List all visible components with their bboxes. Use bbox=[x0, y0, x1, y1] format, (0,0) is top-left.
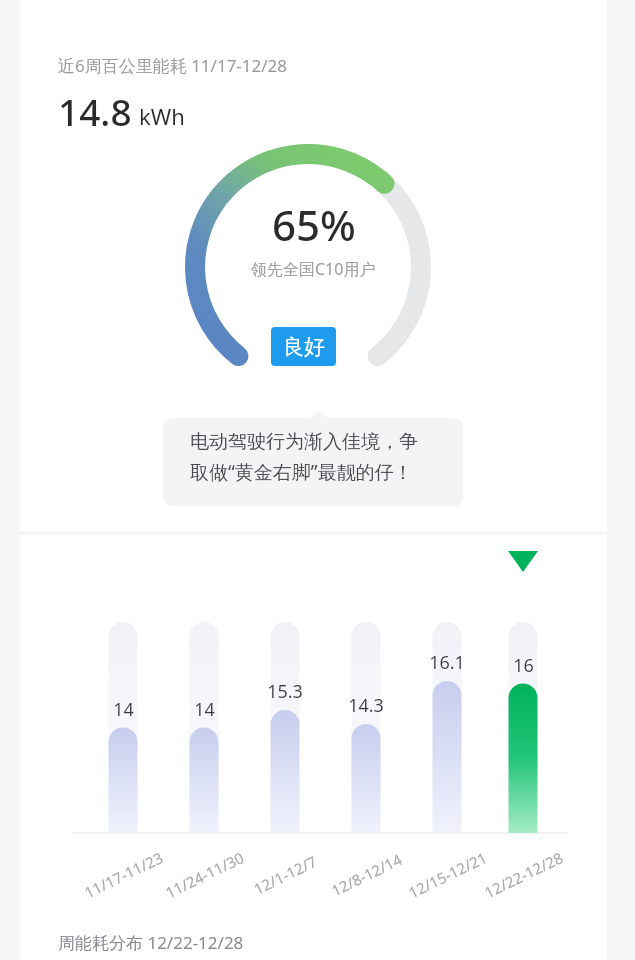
staticText: 12/1-12/7 bbox=[250, 851, 320, 899]
staticText: 领先全国C10用户 bbox=[251, 258, 376, 280]
staticText: 11/17-11/23 bbox=[81, 847, 166, 902]
staticText: 14 bbox=[113, 697, 134, 722]
staticText: 周能耗分布 12/22-12/28 bbox=[58, 931, 244, 954]
staticText: 15.3 bbox=[267, 679, 303, 704]
staticText: 11/24-11/30 bbox=[162, 847, 247, 902]
staticText: 电动驾驶行为渐入佳境，争 bbox=[190, 430, 418, 454]
staticText: 16.1 bbox=[429, 650, 465, 675]
staticText: 良好 bbox=[283, 334, 325, 360]
staticText: 14 bbox=[194, 697, 215, 722]
staticText: 近6周百公里能耗 11/17-12/28 bbox=[58, 54, 288, 77]
staticText: 12/22-12/28 bbox=[481, 847, 566, 902]
staticText: 65% bbox=[272, 196, 356, 253]
staticText: 14.3 bbox=[348, 693, 384, 718]
button[interactable]: 良好 bbox=[271, 327, 336, 366]
staticText: 12/15-12/21 bbox=[405, 847, 490, 902]
staticText: 14.8 bbox=[58, 86, 132, 136]
staticText: kWh bbox=[139, 101, 185, 131]
staticText: 取做“黄金右脚”最靓的仔！ bbox=[190, 459, 413, 485]
staticText: 16 bbox=[513, 653, 534, 678]
staticText: 12/8-12/14 bbox=[327, 849, 405, 901]
